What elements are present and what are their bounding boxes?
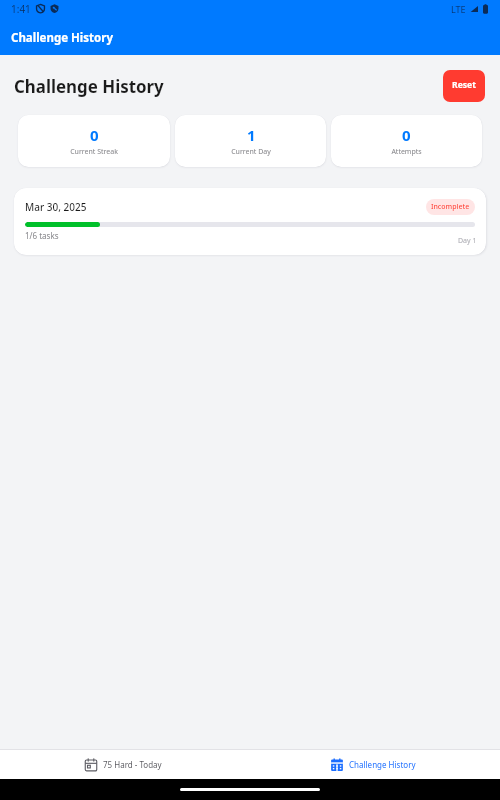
- button[interactable]: 0: [18, 115, 170, 167]
- staticText: Current Streak: [70, 147, 118, 157]
- staticText: 0: [402, 125, 411, 145]
- other: 75 Hard Today: [84, 758, 98, 772]
- staticText: 1/6 tasks: [25, 230, 59, 241]
- staticText: Day 1: [458, 236, 477, 246]
- staticText: Current Day: [231, 147, 271, 157]
- staticText: 0: [90, 125, 99, 145]
- staticText: Attempts: [391, 147, 422, 157]
- staticText: Challenge History: [14, 75, 164, 98]
- staticText: 75 Hard - Today: [103, 759, 162, 770]
- button[interactable]: 0: [331, 115, 482, 167]
- staticText: LTE: [451, 3, 466, 15]
- staticText: Challenge History: [11, 30, 113, 46]
- staticText: Challenge History: [349, 759, 416, 770]
- button[interactable]: Challenge History: [250, 750, 500, 779]
- button[interactable]: Reset: [443, 70, 485, 102]
- staticText: Reset: [452, 79, 476, 91]
- staticText: Mar 30, 2025: [25, 200, 87, 214]
- staticText: 1:41: [11, 2, 31, 16]
- other: Challenge History: [330, 758, 344, 772]
- staticText: Incomplete: [431, 202, 470, 212]
- button[interactable]: 75 Hard Today: [0, 750, 250, 779]
- button[interactable]: 1: [175, 115, 326, 167]
- staticText: 1: [247, 125, 256, 145]
- button[interactable]: Mar 30, 2025: [14, 188, 486, 255]
